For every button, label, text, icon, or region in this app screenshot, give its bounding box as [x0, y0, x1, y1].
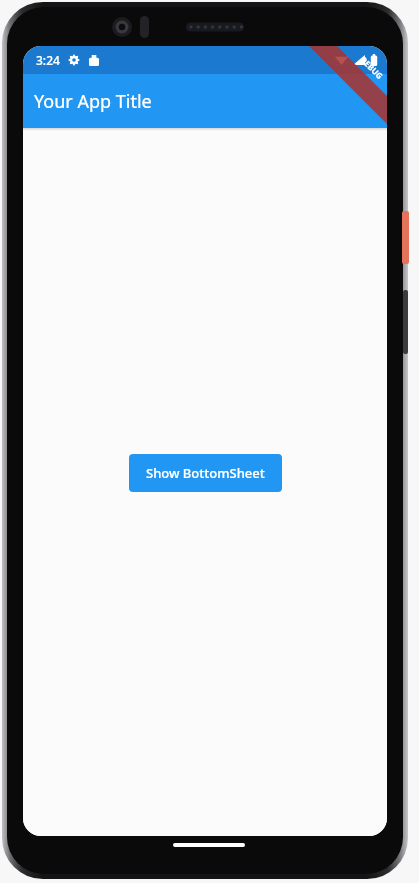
button[interactable]: Show BottomSheet — [129, 454, 282, 492]
staticText: Show BottomSheet — [146, 464, 265, 482]
staticText: Your App Title — [34, 89, 152, 114]
staticText: DEBUG — [358, 54, 386, 81]
staticText: 3:24 — [36, 52, 60, 68]
